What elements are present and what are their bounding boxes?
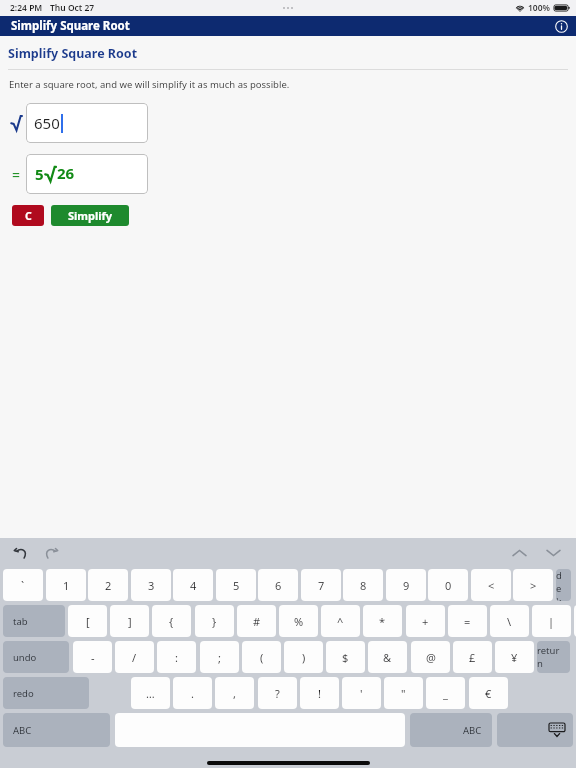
button[interactable]: return [537,641,570,673]
button[interactable]: ^ [321,605,360,637]
button[interactable]: Undo [10,542,32,564]
button[interactable]: 4 [173,569,213,601]
button[interactable]: / [115,641,154,673]
staticText: Thu Oct 27 [50,2,95,14]
button[interactable]: 0 [428,569,468,601]
staticText: 9 [403,578,410,593]
button[interactable]: C [12,205,44,226]
button[interactable]: tab [3,605,65,637]
button[interactable]: ABC [3,713,110,747]
staticText: £ [469,650,476,665]
button[interactable]: 650 [26,103,148,143]
staticText: 1 [63,578,70,593]
staticText: Simplify Square Root [8,45,138,62]
staticText: Simplify [68,208,113,223]
button[interactable]: { [152,605,191,637]
button[interactable]: | [532,605,571,637]
button[interactable]: ; [200,641,239,673]
button[interactable]: 2 [88,569,128,601]
staticText: 0 [445,578,452,593]
button[interactable]: # [237,605,276,637]
button[interactable]: \ [490,605,529,637]
staticText: ' [360,686,363,701]
button[interactable]: Simplify [51,205,129,226]
staticText: 8 [360,578,367,593]
staticText: > [530,578,537,593]
button[interactable]: ) [284,641,323,673]
staticText: ABC [13,724,32,737]
button[interactable]: > [513,569,553,601]
staticText: - [91,650,95,665]
staticText: 6 [275,578,282,593]
button[interactable]: ] [110,605,149,637]
button[interactable]: Info [554,19,569,34]
button[interactable]: 9 [386,569,426,601]
staticText: ` [21,578,25,593]
button[interactable]: Redo [40,542,62,564]
staticText: 650 [34,113,60,133]
button[interactable]: = [448,605,487,637]
button[interactable]: _ [426,677,465,709]
button[interactable]: £ [453,641,492,673]
button[interactable]: , [215,677,254,709]
button[interactable]: ABC [410,713,492,747]
button[interactable]: 8 [343,569,383,601]
staticText: Enter a square root, and we will simplif… [9,78,290,91]
button[interactable]: 5 [26,154,148,194]
button[interactable]: - [73,641,112,673]
staticText: : [175,650,178,665]
button[interactable]: ` [3,569,43,601]
staticText: … [146,686,155,701]
staticText: 7 [318,578,325,593]
staticText: , [233,686,236,701]
staticText: @ [426,650,436,665]
staticText: 3 [148,578,155,593]
staticText: } [212,614,217,629]
staticText: " [401,686,406,701]
button[interactable]: & [368,641,407,673]
button[interactable]: Previous field [508,542,530,564]
button[interactable]: redo [3,677,89,709]
button[interactable]: ~ [574,605,576,637]
button[interactable]: 1 [46,569,86,601]
button[interactable]: Next field [542,542,564,564]
staticText: ! [318,686,321,701]
button[interactable]: [ [68,605,107,637]
button[interactable]: Hide keyboard [497,713,573,747]
button[interactable]: % [279,605,318,637]
button[interactable]: undo [3,641,69,673]
staticText: ¥ [511,650,518,665]
button[interactable]: 5 [216,569,256,601]
button[interactable]: 7 [301,569,341,601]
button[interactable]: $ [326,641,365,673]
button[interactable]: ¥ [495,641,534,673]
button[interactable]: " [384,677,423,709]
staticText: * [379,614,386,629]
button[interactable]: delete [556,569,571,601]
staticText: 5 [35,164,44,184]
button[interactable]: . [173,677,212,709]
button[interactable]: @ [411,641,450,673]
button[interactable]: … [131,677,170,709]
staticText: tab [13,615,28,628]
staticText: ( [260,650,264,665]
staticText: redo [13,687,34,700]
staticText: C [25,209,32,223]
staticText: & [383,650,392,665]
button[interactable]: : [157,641,196,673]
button[interactable]: ? [258,677,297,709]
staticText: % [294,614,304,629]
button[interactable]: 6 [258,569,298,601]
button[interactable]: € [469,677,508,709]
button[interactable]: 3 [131,569,171,601]
button[interactable]: ' [342,677,381,709]
button[interactable]: ! [300,677,339,709]
button[interactable]: * [363,605,402,637]
staticText: [ [86,614,90,629]
staticText: \ [507,614,512,629]
button[interactable]: } [195,605,234,637]
button[interactable]: ( [242,641,281,673]
button[interactable]: < [471,569,511,601]
button[interactable]: + [406,605,445,637]
